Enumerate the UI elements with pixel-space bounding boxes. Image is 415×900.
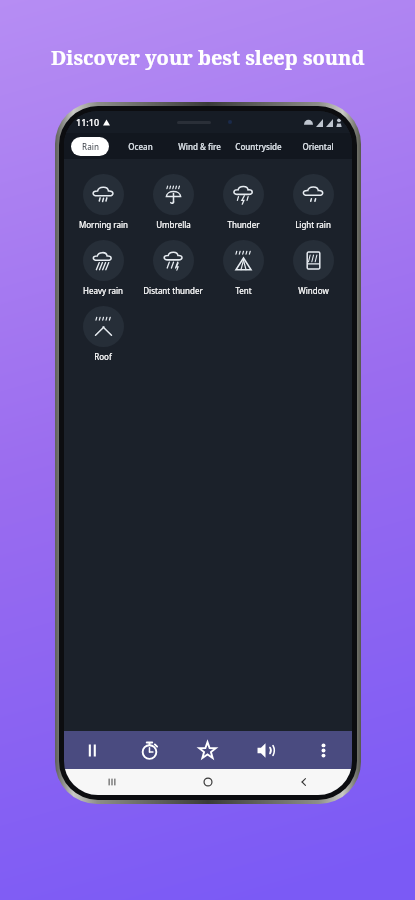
button[interactable]: Heavy rain xyxy=(68,235,138,301)
staticText: 11:10 xyxy=(76,116,100,128)
button[interactable]: Umbrella xyxy=(138,169,208,235)
button[interactable]: Rain xyxy=(71,137,109,156)
button[interactable]: Timer xyxy=(121,731,178,769)
button[interactable]: Oriental xyxy=(290,137,345,156)
button[interactable]: Morning rain xyxy=(68,169,138,235)
staticText: Countryside xyxy=(235,141,282,152)
button[interactable]: Favorites xyxy=(178,731,236,769)
staticText: Discover your best sleep sound xyxy=(51,44,365,71)
staticText: Morning rain xyxy=(79,219,128,230)
staticText: Light rain xyxy=(295,219,331,230)
button[interactable]: More options xyxy=(294,731,352,769)
button[interactable]: Tent xyxy=(208,235,278,301)
staticText: Rain xyxy=(82,141,99,152)
button[interactable]: Ocean xyxy=(113,137,168,156)
button[interactable]: Back xyxy=(256,769,352,795)
staticText: Wind & fire xyxy=(178,141,221,152)
button[interactable]: Countryside xyxy=(231,137,286,156)
button[interactable]: Volume xyxy=(236,731,294,769)
staticText: Oriental xyxy=(302,141,334,152)
button[interactable]: Home xyxy=(160,769,256,795)
staticText: Tent xyxy=(235,285,252,296)
staticText: Thunder xyxy=(227,219,260,230)
staticText: Distant thunder xyxy=(143,285,203,296)
staticText: Heavy rain xyxy=(83,285,123,296)
button[interactable]: Thunder xyxy=(208,169,278,235)
button[interactable]: Light rain xyxy=(278,169,348,235)
button[interactable]: Wind & fire xyxy=(172,137,227,156)
button[interactable]: Distant thunder xyxy=(138,235,208,301)
button[interactable]: Pause xyxy=(64,731,121,769)
button[interactable]: Window xyxy=(278,235,348,301)
button[interactable]: Recents xyxy=(64,769,160,795)
staticText: Umbrella xyxy=(156,219,191,230)
staticText: Window xyxy=(298,285,329,296)
button[interactable]: Roof xyxy=(68,301,138,367)
staticText: Roof xyxy=(94,351,112,362)
staticText: Ocean xyxy=(128,141,153,152)
